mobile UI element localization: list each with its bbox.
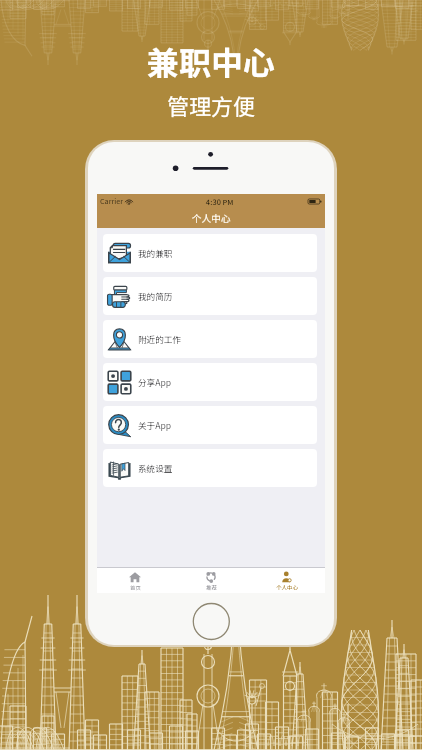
staticText: Carrier: [100, 196, 123, 206]
button[interactable]: 个人中心: [249, 568, 325, 593]
staticText: 个人中心: [192, 211, 231, 225]
staticText: 关于App: [138, 419, 172, 431]
staticText: 个人中心: [276, 584, 298, 592]
button[interactable]: Settings: [103, 449, 317, 487]
button[interactable]: 推荐: [173, 568, 249, 593]
staticText: 4:30 PM: [206, 196, 234, 207]
button[interactable]: My jobs: [103, 234, 317, 272]
button[interactable]: About App: [103, 406, 317, 444]
staticText: 系统设置: [138, 462, 173, 474]
staticText: 推荐: [206, 584, 217, 592]
button[interactable]: 首页: [97, 568, 173, 593]
staticText: 附近的工作: [138, 333, 181, 345]
button[interactable]: My resume: [103, 277, 317, 315]
button[interactable]: Nearby jobs: [103, 320, 317, 358]
staticText: 我的简历: [138, 290, 173, 302]
staticText: 我的兼职: [138, 247, 173, 259]
staticText: 分享App: [138, 376, 172, 388]
staticText: 首页: [130, 584, 141, 592]
button[interactable]: Share App: [103, 363, 317, 401]
staticText: 兼职中心: [147, 38, 276, 84]
staticText: 管理方便: [167, 89, 256, 121]
